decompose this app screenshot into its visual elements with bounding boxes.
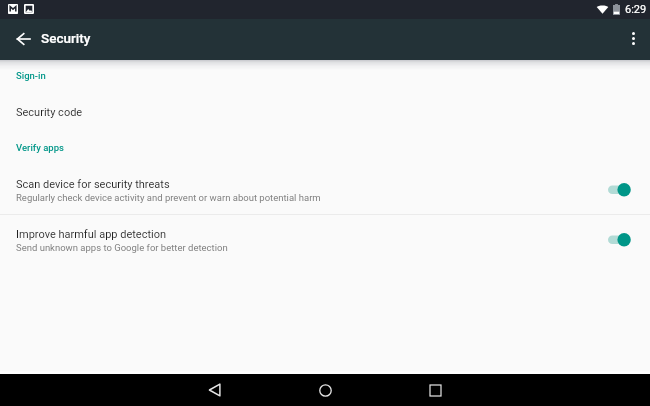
button[interactable]: Recent apps	[413, 374, 457, 406]
staticText: Sign-in	[16, 70, 46, 81]
button[interactable]: More options	[617, 22, 650, 55]
staticText: Security	[41, 30, 91, 46]
staticText: Send unknown apps to Google for better d…	[16, 242, 228, 253]
staticText: 6:29	[625, 3, 647, 16]
button[interactable]: Home	[303, 374, 347, 406]
button[interactable]: Security code	[0, 97, 650, 127]
staticText: Improve harmful app detection	[16, 228, 167, 241]
button[interactable]: Scan device for security threats	[0, 169, 650, 212]
button[interactable]: Back	[193, 374, 237, 406]
staticText: Scan device for security threats	[16, 178, 170, 191]
staticText: Regularly check device activity and prev…	[16, 192, 321, 203]
staticText: Security code	[16, 106, 83, 119]
button[interactable]: Navigate up	[7, 22, 40, 55]
button[interactable]: Improve harmful app detection	[0, 219, 650, 262]
staticText: Verify apps	[16, 142, 64, 153]
